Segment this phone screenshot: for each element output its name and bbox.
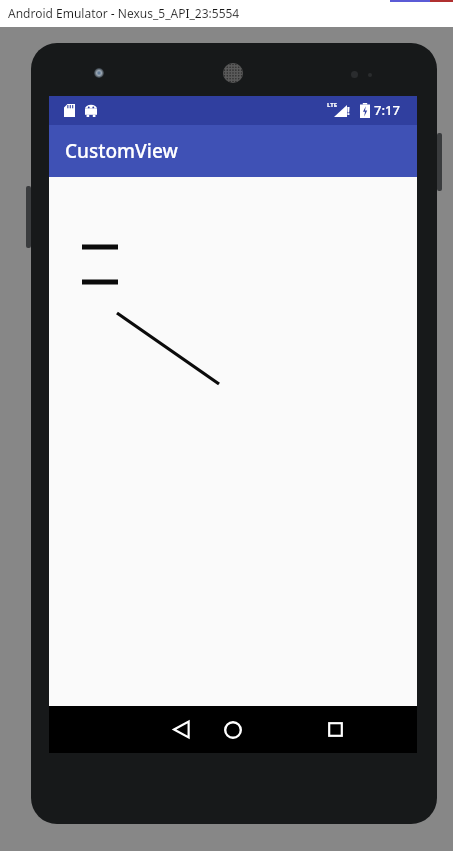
staticText: CustomView: [65, 138, 178, 164]
button[interactable]: Home: [205, 706, 261, 753]
button[interactable]: Recent apps: [307, 706, 363, 753]
staticText: Android Emulator - Nexus_5_API_23:5554: [8, 5, 240, 21]
staticText: 7:17: [374, 101, 400, 119]
staticText: LTE: [327, 101, 338, 109]
button[interactable]: Back: [153, 706, 209, 753]
staticText: !: [347, 104, 350, 118]
button[interactable]: CustomView: [49, 125, 417, 177]
